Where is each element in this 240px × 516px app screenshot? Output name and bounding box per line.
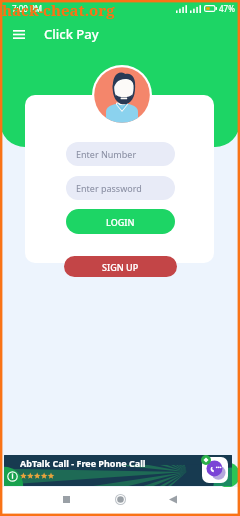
staticText: AbTalk Call - Free Phone Call bbox=[20, 457, 146, 469]
button[interactable]: LOGIN bbox=[66, 209, 175, 234]
staticText: Enter password bbox=[76, 182, 142, 194]
button[interactable]: Recents bbox=[52, 489, 80, 509]
staticText: 47% bbox=[219, 3, 235, 14]
staticText: 7:00 PM bbox=[12, 3, 43, 14]
button[interactable]: SIGN UP bbox=[64, 256, 177, 277]
button[interactable]: Home bbox=[106, 489, 134, 509]
staticText: hack-cheat.org bbox=[2, 0, 115, 20]
button[interactable]: Menu bbox=[9, 24, 29, 44]
button[interactable]: AbTalk Call - Free Phone Call bbox=[4, 455, 232, 486]
button[interactable]: Enter Number bbox=[66, 142, 175, 166]
staticText: Enter Number bbox=[76, 148, 137, 160]
button[interactable]: Back bbox=[159, 489, 187, 509]
staticText: Click Pay bbox=[44, 25, 99, 43]
staticText: LOGIN bbox=[106, 216, 135, 228]
button[interactable]: Enter password bbox=[66, 176, 175, 200]
other: Ad info bbox=[7, 471, 18, 482]
staticText: SIGN UP bbox=[102, 261, 139, 273]
